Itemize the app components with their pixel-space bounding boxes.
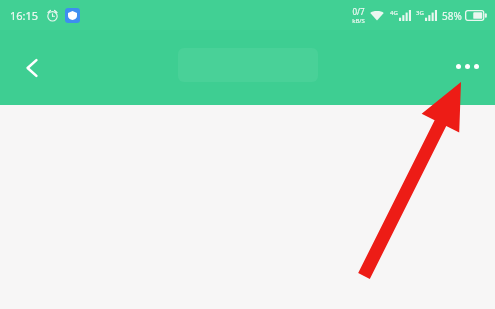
button[interactable]: Back (8, 44, 56, 92)
staticText: kB/S (352, 17, 365, 25)
button[interactable]: More options (445, 44, 489, 88)
staticText: 4G (390, 9, 398, 17)
staticText: 58% (442, 9, 462, 23)
staticText: 3G (416, 9, 424, 17)
staticText: 0/7 (352, 6, 365, 17)
staticText: 16:15 (10, 8, 39, 23)
